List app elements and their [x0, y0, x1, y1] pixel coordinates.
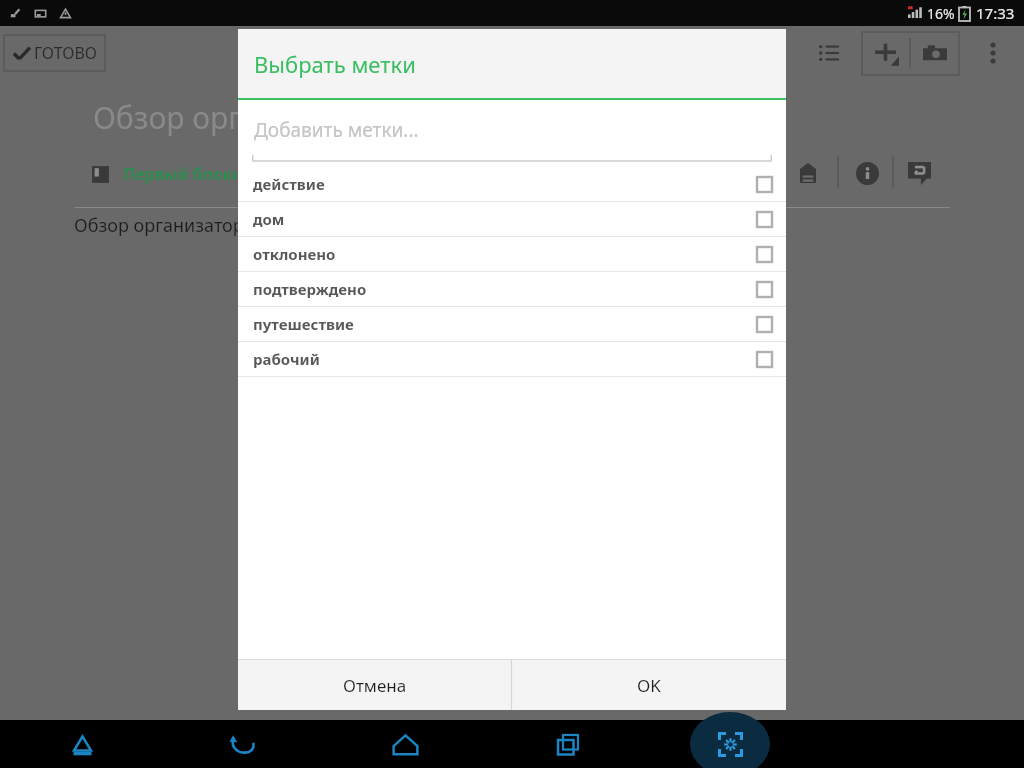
staticText: рабочий	[253, 349, 320, 369]
button[interactable]: путешествие	[238, 307, 786, 341]
staticText: дом	[253, 209, 285, 229]
staticText: 17:33	[976, 3, 1015, 23]
staticText: подтверждено	[253, 279, 367, 299]
staticText: Выбрать метки	[254, 49, 416, 79]
staticText: Добавить метки...	[254, 117, 419, 143]
button[interactable]: Tags	[792, 157, 824, 189]
button[interactable]: Back	[215, 720, 271, 768]
button[interactable]: Add note	[862, 32, 910, 75]
button[interactable]: Screenshot	[690, 720, 770, 768]
staticText: Отмена	[343, 674, 407, 697]
staticText: 16%	[927, 4, 955, 23]
button[interactable]: дом	[238, 202, 786, 236]
button[interactable]: Camera	[911, 32, 958, 75]
button[interactable]: отклонено	[238, 237, 786, 271]
button[interactable]: действие	[238, 167, 786, 201]
button[interactable]: OK	[512, 660, 786, 710]
button[interactable]: Первый блокнот	[90, 157, 261, 191]
button[interactable]: рабочий	[238, 342, 786, 376]
staticText: отклонено	[253, 244, 336, 264]
button[interactable]: Reminder	[903, 157, 935, 189]
staticText: Обзор организатора	[74, 213, 254, 238]
staticText: ГОТОВО	[34, 42, 98, 64]
staticText: Обзор организации	[93, 97, 383, 138]
button[interactable]: Info	[851, 157, 883, 189]
staticText: путешествие	[253, 314, 354, 334]
button[interactable]: Отмена	[238, 660, 511, 710]
button[interactable]: Home	[377, 720, 433, 768]
staticText: OK	[637, 674, 661, 697]
button[interactable]: More options	[976, 36, 1010, 70]
staticText: действие	[253, 174, 325, 194]
button[interactable]: ГОТОВО	[4, 35, 105, 71]
button[interactable]: подтверждено	[238, 272, 786, 306]
button[interactable]: List view	[812, 36, 846, 70]
staticText: Первый блокнот	[123, 163, 261, 185]
button[interactable]: Recent apps	[540, 720, 596, 768]
button[interactable]: Menu	[54, 720, 110, 768]
